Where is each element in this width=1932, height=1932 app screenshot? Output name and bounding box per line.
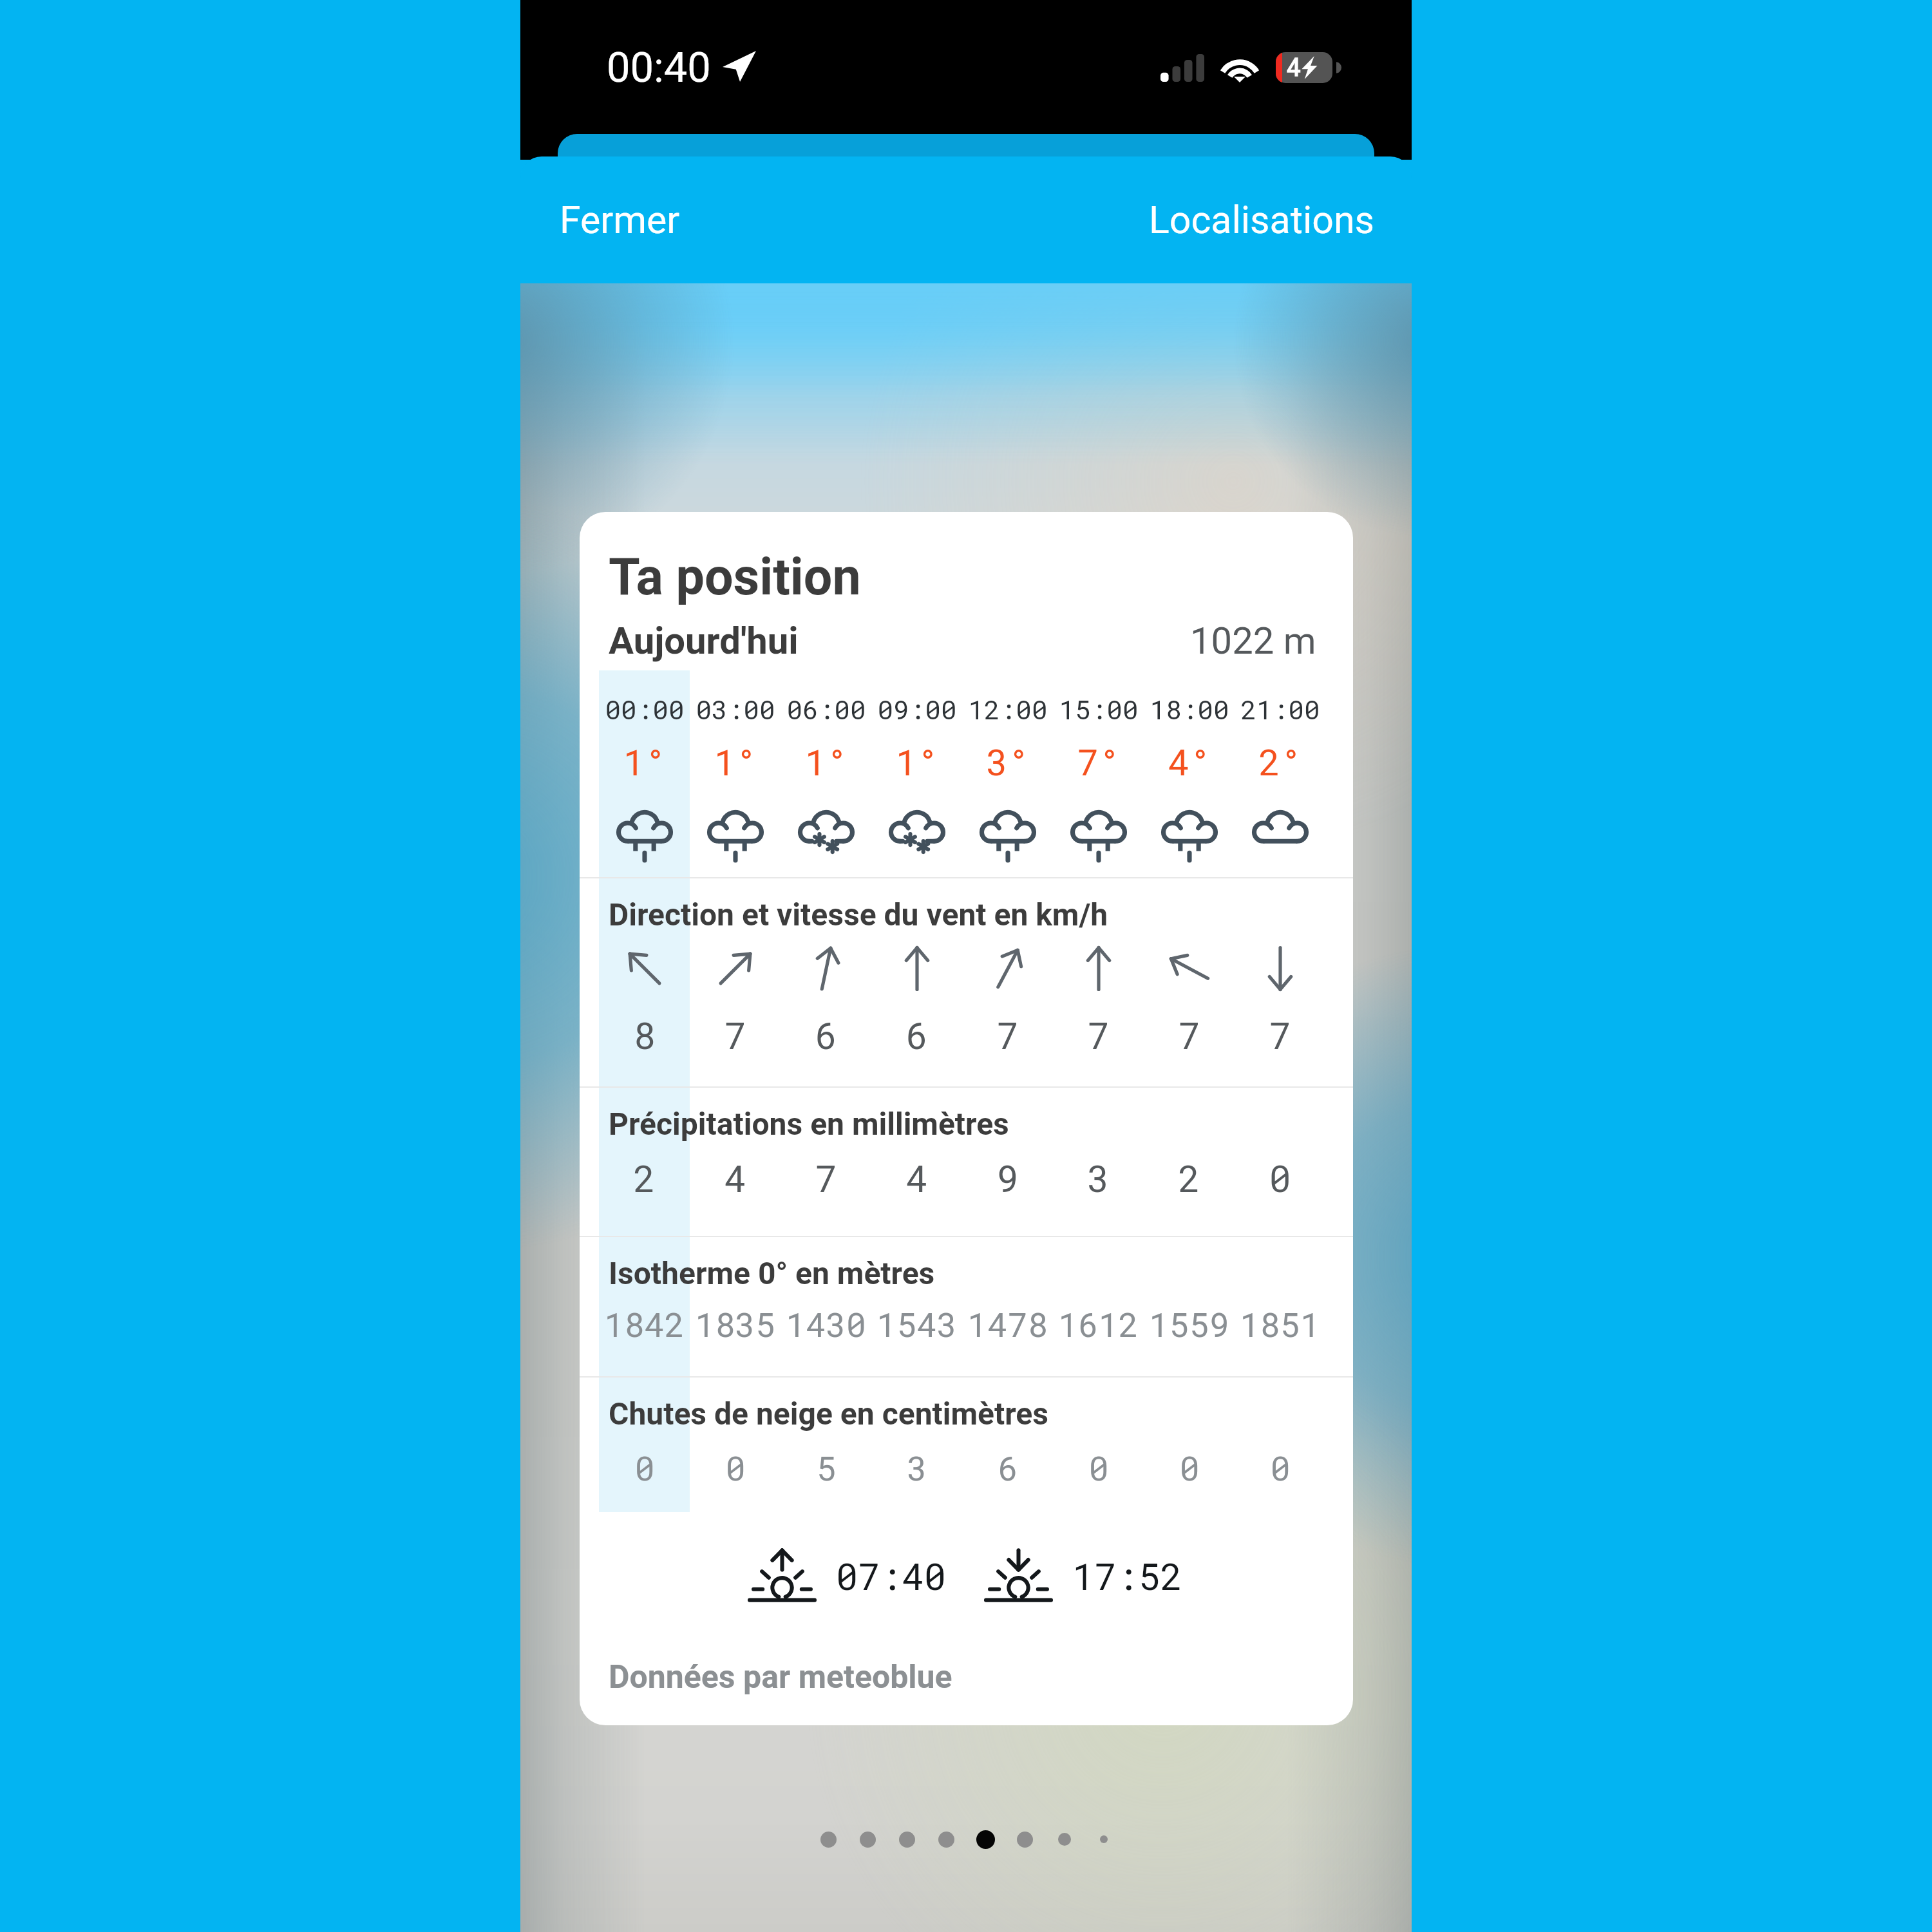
button[interactable]: Page 5 (966, 1826, 1005, 1852)
staticText: 15:00 (1059, 692, 1139, 726)
staticText: 3 (907, 1446, 927, 1490)
staticText: 7 (996, 1010, 1019, 1059)
staticText: 1835 (695, 1302, 775, 1347)
staticText: 4° (1168, 737, 1211, 785)
staticText: 1° (804, 737, 848, 785)
staticText: 1° (623, 737, 667, 785)
staticText: 1° (714, 737, 757, 785)
button[interactable]: Ta position (580, 512, 1353, 1725)
staticText: Précipitations en millimètres (609, 1106, 1009, 1142)
button[interactable]: Page 4 (927, 1826, 966, 1852)
staticText: Données par meteoblue (609, 1658, 952, 1696)
staticText: 5 (816, 1446, 837, 1490)
staticText: Fermer (560, 198, 680, 242)
staticText: 1° (895, 737, 939, 785)
staticText: 1612 (1058, 1302, 1139, 1347)
staticText: 2° (1258, 737, 1302, 785)
staticText: 4 (1287, 53, 1301, 82)
staticText: 21:00 (1240, 692, 1320, 726)
staticText: Localisations (1149, 198, 1374, 242)
staticText: Direction et vitesse du vent en km/h (609, 896, 1108, 933)
staticText: 1559 (1149, 1302, 1229, 1347)
button[interactable]: Page 2 (848, 1826, 887, 1852)
staticText: 17:52 (1072, 1551, 1183, 1600)
button[interactable]: Page 1 (809, 1826, 848, 1852)
staticText: 1430 (786, 1302, 866, 1347)
button[interactable]: Page 7 (1045, 1826, 1084, 1852)
staticText: 4 (724, 1153, 746, 1202)
staticText: 1478 (967, 1302, 1048, 1347)
staticText: 7 (815, 1153, 837, 1202)
button[interactable]: Page 3 (887, 1826, 927, 1852)
button[interactable]: Fermer (520, 189, 693, 251)
staticText: 6 (815, 1010, 837, 1059)
staticText: 0 (1269, 1153, 1291, 1202)
staticText: 12:00 (968, 692, 1048, 726)
staticText: 0 (1088, 1446, 1109, 1490)
staticText: 0 (1179, 1446, 1200, 1490)
staticText: Ta position (609, 547, 861, 607)
staticText: 03:00 (696, 692, 775, 726)
staticText: 3° (986, 737, 1030, 785)
staticText: 0 (725, 1446, 746, 1490)
staticText: 9 (996, 1153, 1019, 1202)
staticText: 00:40 (607, 43, 711, 92)
staticText: 0 (1270, 1446, 1291, 1490)
staticText: 1842 (604, 1302, 685, 1347)
staticText: 6 (998, 1446, 1018, 1490)
button[interactable]: Localisations (1136, 189, 1412, 251)
button[interactable]: Page 8 (1084, 1826, 1123, 1852)
staticText: 7 (1087, 1010, 1110, 1059)
staticText: 8 (633, 1010, 656, 1059)
staticText: 18:00 (1150, 692, 1229, 726)
staticText: 2 (1178, 1153, 1200, 1202)
staticText: 6 (905, 1010, 928, 1059)
staticText: Isotherme 0° en mètres (609, 1255, 935, 1291)
staticText: 3 (1087, 1153, 1110, 1202)
staticText: 7 (1178, 1010, 1200, 1059)
staticText: 0 (634, 1446, 655, 1490)
staticText: 2 (633, 1153, 656, 1202)
staticText: Chutes de neige en centimètres (609, 1396, 1048, 1432)
staticText: 1851 (1240, 1302, 1320, 1347)
staticText: 00:00 (605, 692, 685, 726)
staticText: 7 (1269, 1010, 1291, 1059)
staticText: 1022 m (1190, 619, 1316, 663)
staticText: 07:40 (836, 1551, 947, 1600)
staticText: 4 (905, 1153, 928, 1202)
staticText: Aujourd'hui (609, 619, 799, 663)
staticText: 7° (1077, 737, 1121, 785)
button[interactable]: Page 6 (1005, 1826, 1045, 1852)
staticText: 1543 (876, 1302, 957, 1347)
staticText: 06:00 (786, 692, 866, 726)
staticText: 7 (724, 1010, 746, 1059)
staticText: 09:00 (877, 692, 957, 726)
